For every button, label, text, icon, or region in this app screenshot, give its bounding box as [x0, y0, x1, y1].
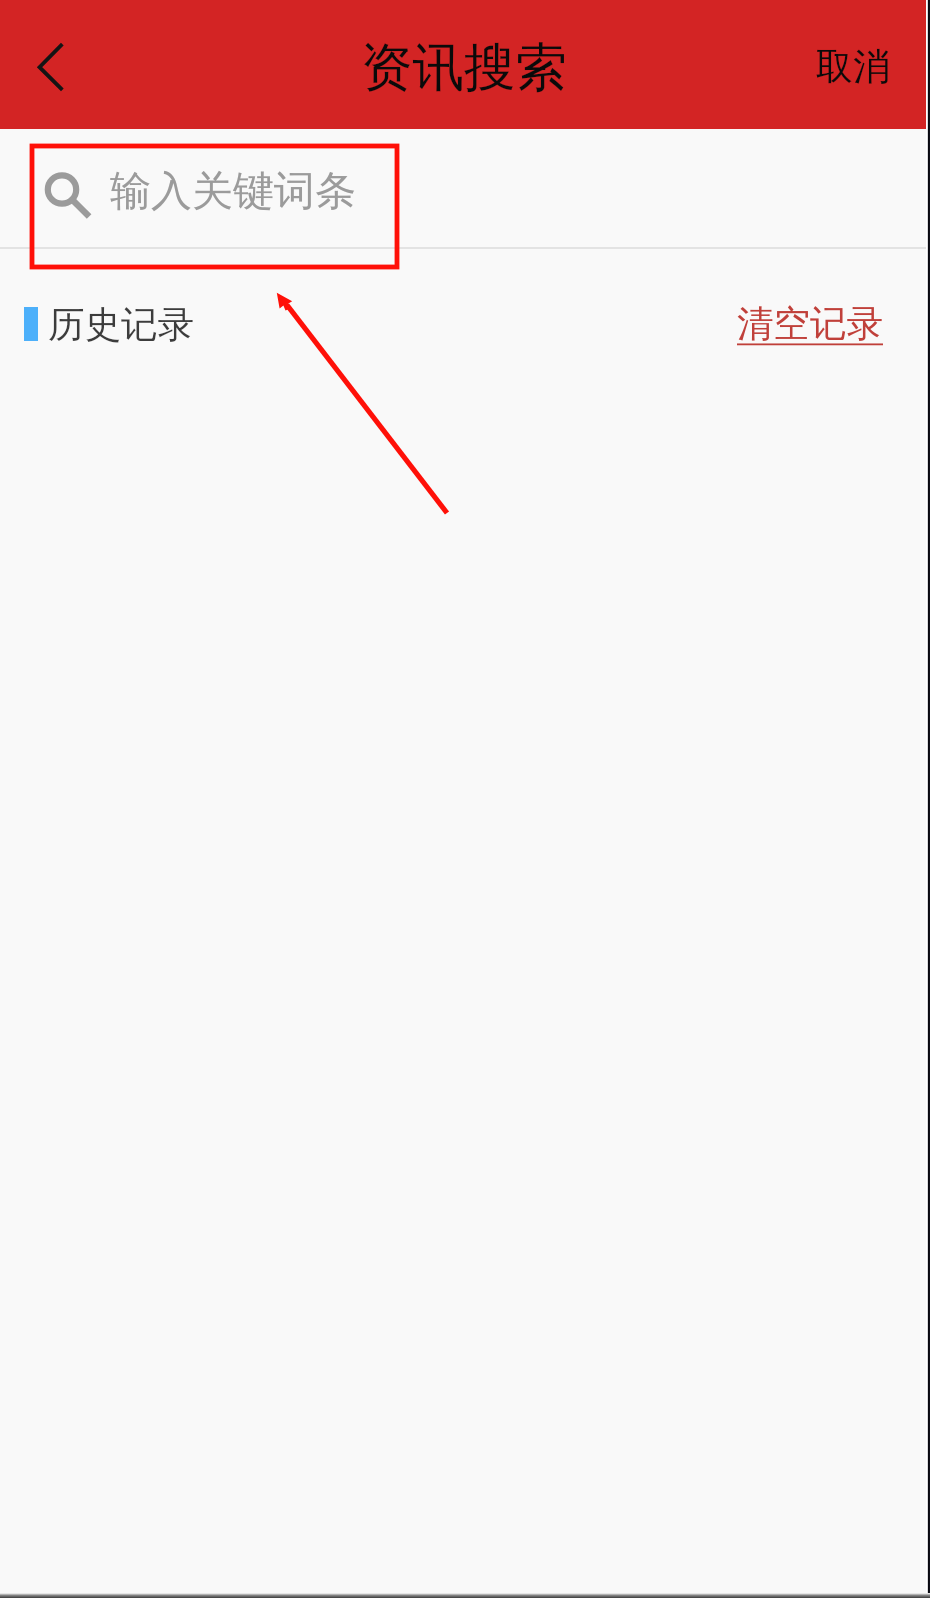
staticText: 历史记录	[48, 302, 194, 348]
staticText: 资讯搜索	[361, 35, 567, 100]
button[interactable]: 输入关键词条	[0, 129, 930, 250]
button[interactable]: 清空记录	[713, 274, 930, 374]
staticText: 取消	[816, 43, 890, 90]
button[interactable]: 取消	[786, 0, 930, 129]
staticText: 清空记录	[737, 301, 883, 347]
staticText: 输入关键词条	[110, 166, 356, 218]
button[interactable]: Back	[0, 0, 100, 129]
